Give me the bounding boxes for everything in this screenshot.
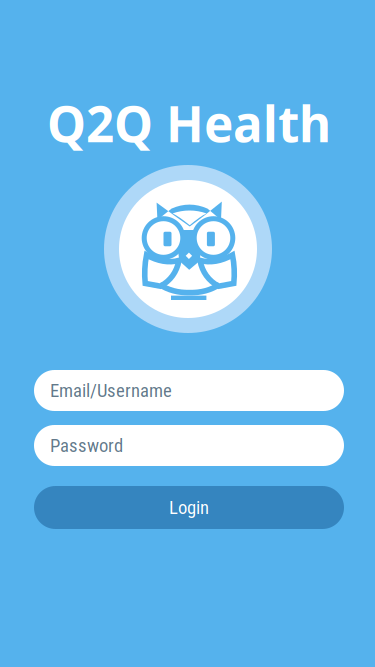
staticText: Login [169, 497, 209, 518]
staticText: Q2Q Health [47, 90, 331, 156]
button[interactable]: Email/Username [34, 370, 344, 411]
staticText: Email/Username [50, 380, 172, 401]
staticText: Password [50, 435, 123, 456]
button[interactable]: Login [34, 486, 344, 529]
button[interactable]: Password [34, 425, 344, 466]
